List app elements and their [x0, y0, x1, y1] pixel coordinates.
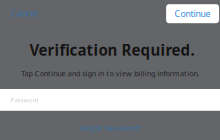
- button[interactable]: Forgot Password?: [74, 119, 148, 137]
- staticText: Tap Continue and sign in to view billing…: [21, 68, 199, 78]
- button[interactable]: Continue: [166, 4, 219, 23]
- staticText: Continue: [175, 8, 211, 20]
- button[interactable]: Password: [0, 89, 220, 111]
- button[interactable]: Cancel: [2, 2, 45, 24]
- staticText: Password: [10, 96, 38, 104]
- staticText: Verification Required.: [29, 40, 194, 60]
- staticText: Cancel: [10, 7, 37, 19]
- staticText: Forgot Password?: [80, 123, 142, 133]
